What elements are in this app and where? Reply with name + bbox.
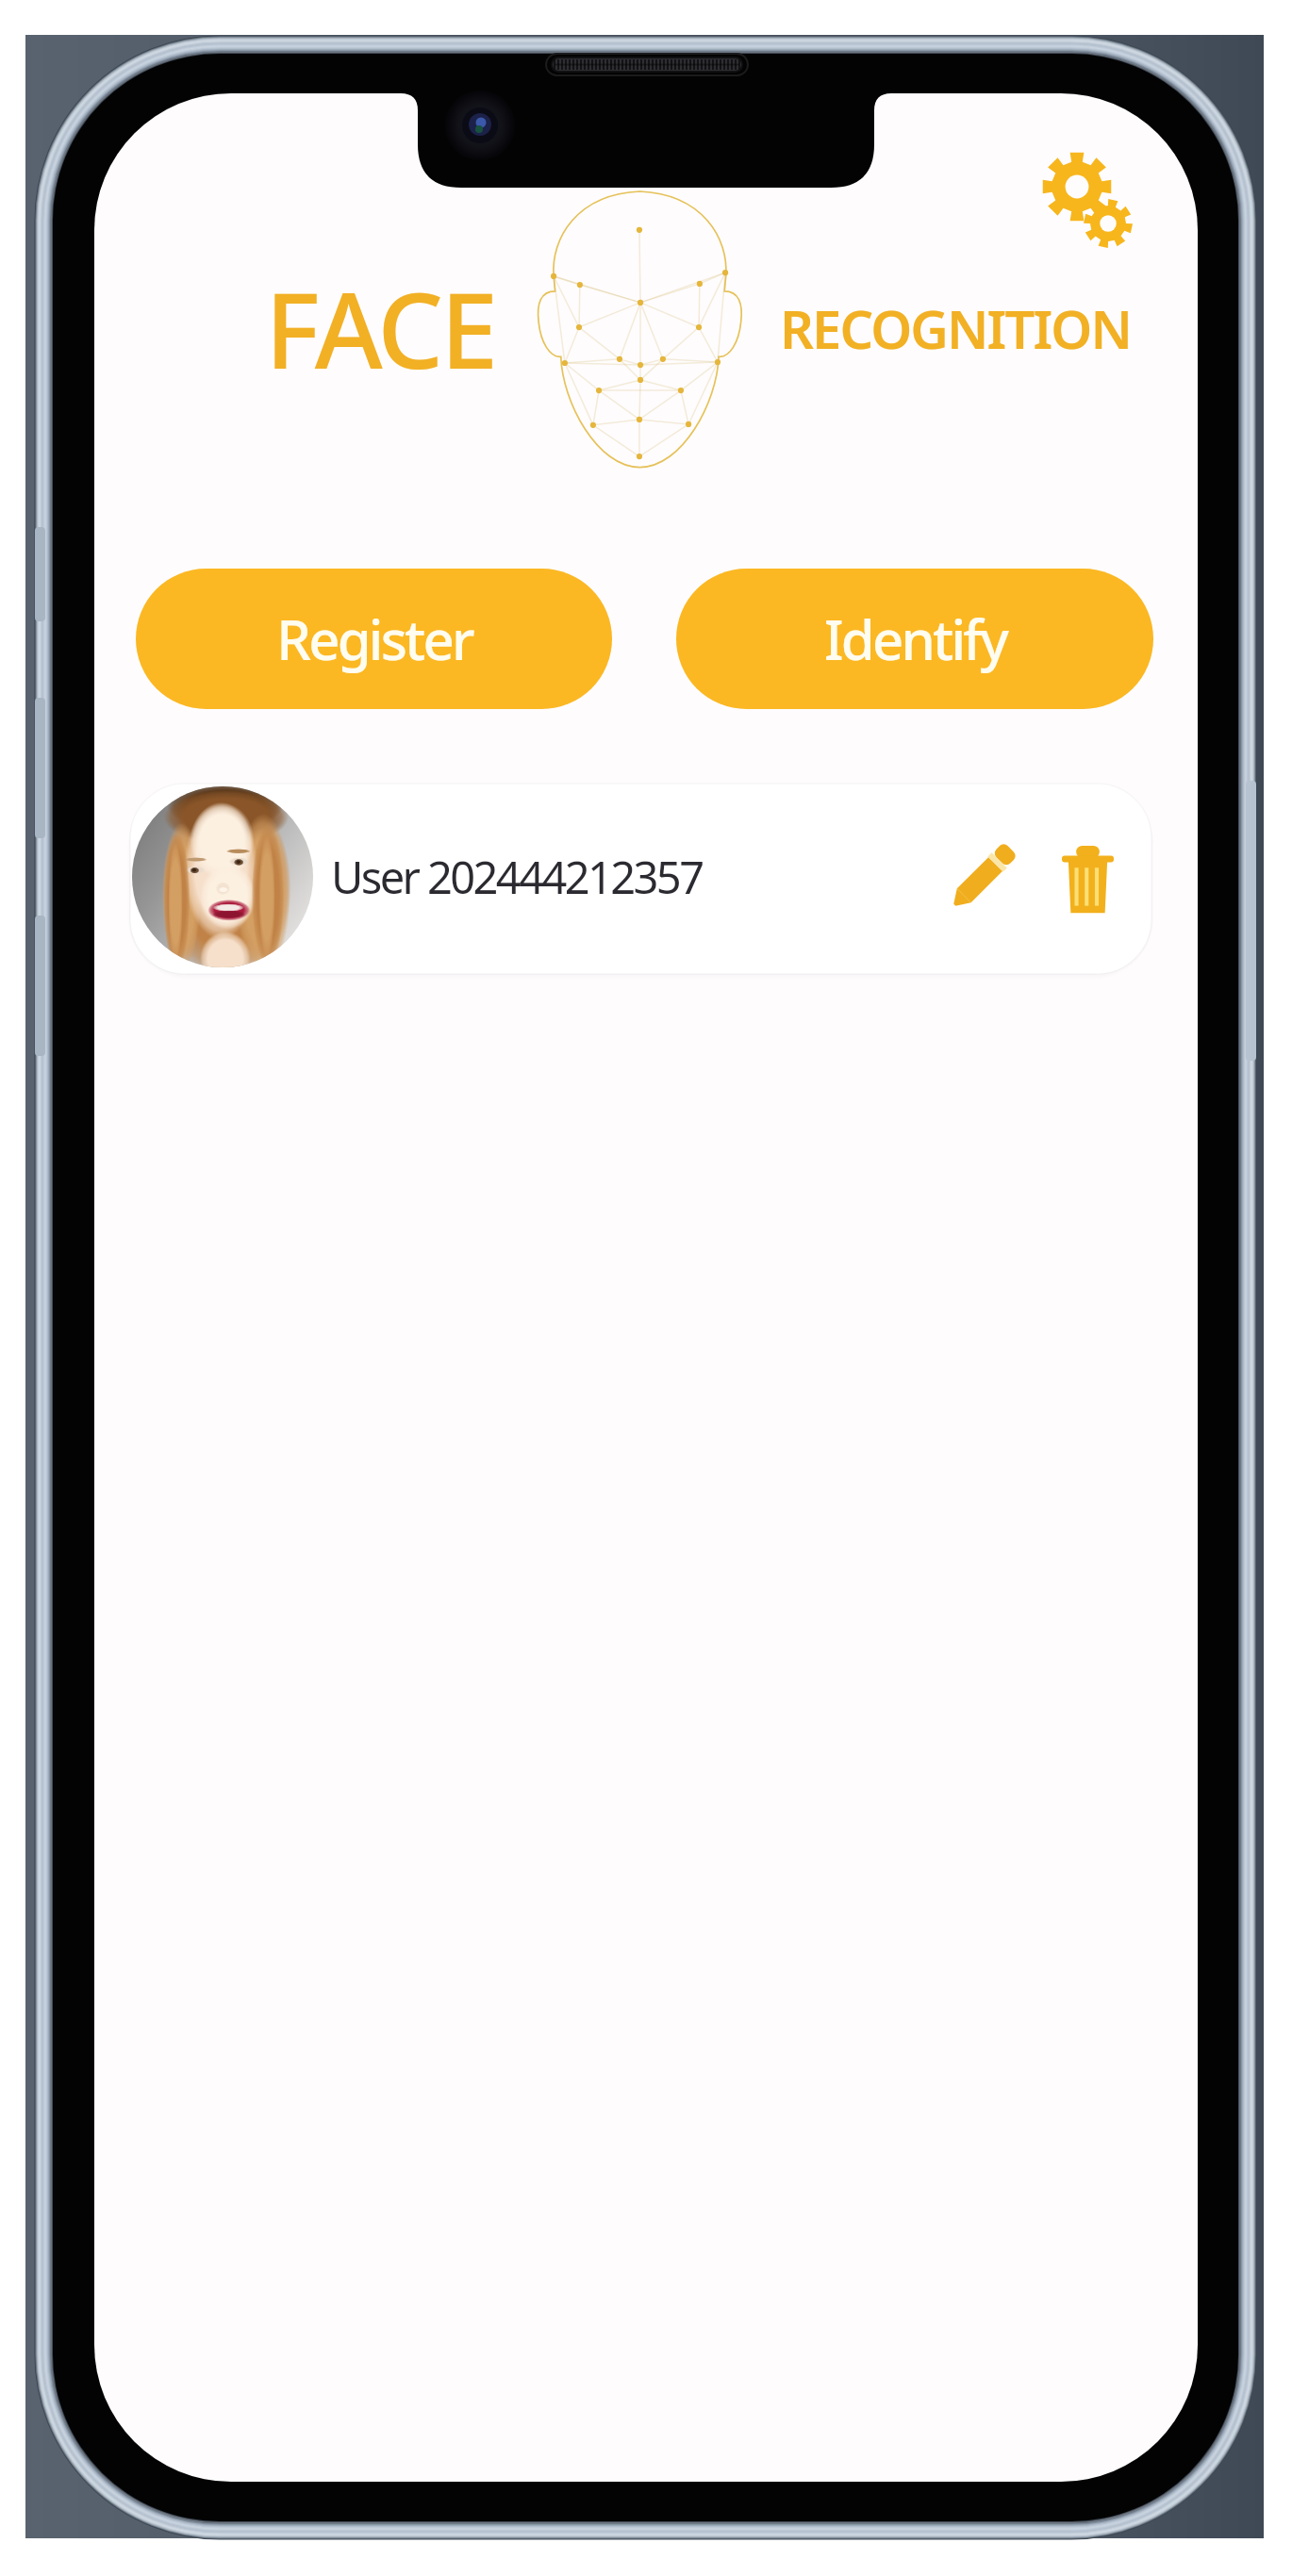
staticText: Register: [276, 602, 472, 676]
button[interactable]: Identify: [676, 569, 1153, 709]
staticText: User 202444212357: [331, 847, 703, 907]
staticText: Identify: [824, 602, 1006, 676]
button[interactable]: Edit: [936, 830, 1030, 924]
button[interactable]: Register: [136, 569, 612, 709]
staticText: FACE: [265, 257, 496, 399]
button[interactable]: Settings: [1037, 149, 1151, 262]
button[interactable]: User 202444212357: [128, 782, 1153, 978]
button[interactable]: Delete: [1062, 836, 1114, 926]
staticText: RECOGNITION: [780, 292, 1131, 364]
